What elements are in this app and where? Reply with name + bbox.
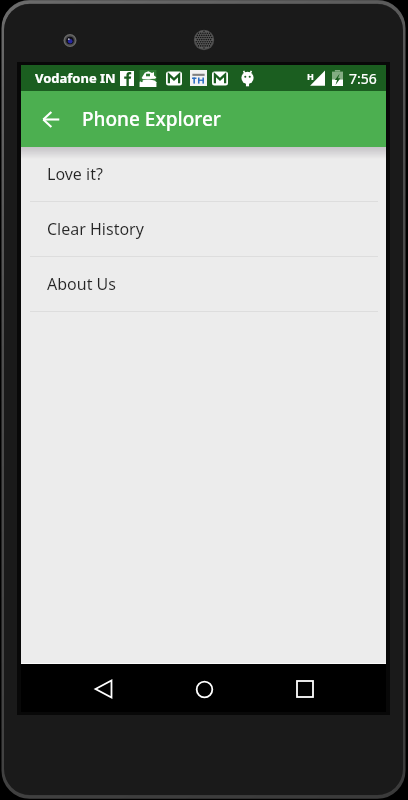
button[interactable]: Recent apps (281, 665, 329, 713)
staticText: Clear History (47, 218, 144, 240)
staticText: H (307, 70, 314, 82)
staticText: About Us (47, 273, 116, 295)
staticText: 7:56 (349, 69, 377, 88)
staticText: Vodafone IN (35, 69, 116, 87)
button[interactable]: Clear History (21, 202, 386, 257)
staticText: Phone Explorer (82, 106, 221, 132)
button[interactable]: About Us (21, 257, 386, 312)
button[interactable]: Navigate up (32, 100, 70, 138)
button[interactable]: Back (79, 665, 127, 713)
button[interactable]: Home (180, 665, 228, 713)
staticText: Love it? (47, 163, 103, 185)
button[interactable]: Love it? (21, 147, 386, 202)
